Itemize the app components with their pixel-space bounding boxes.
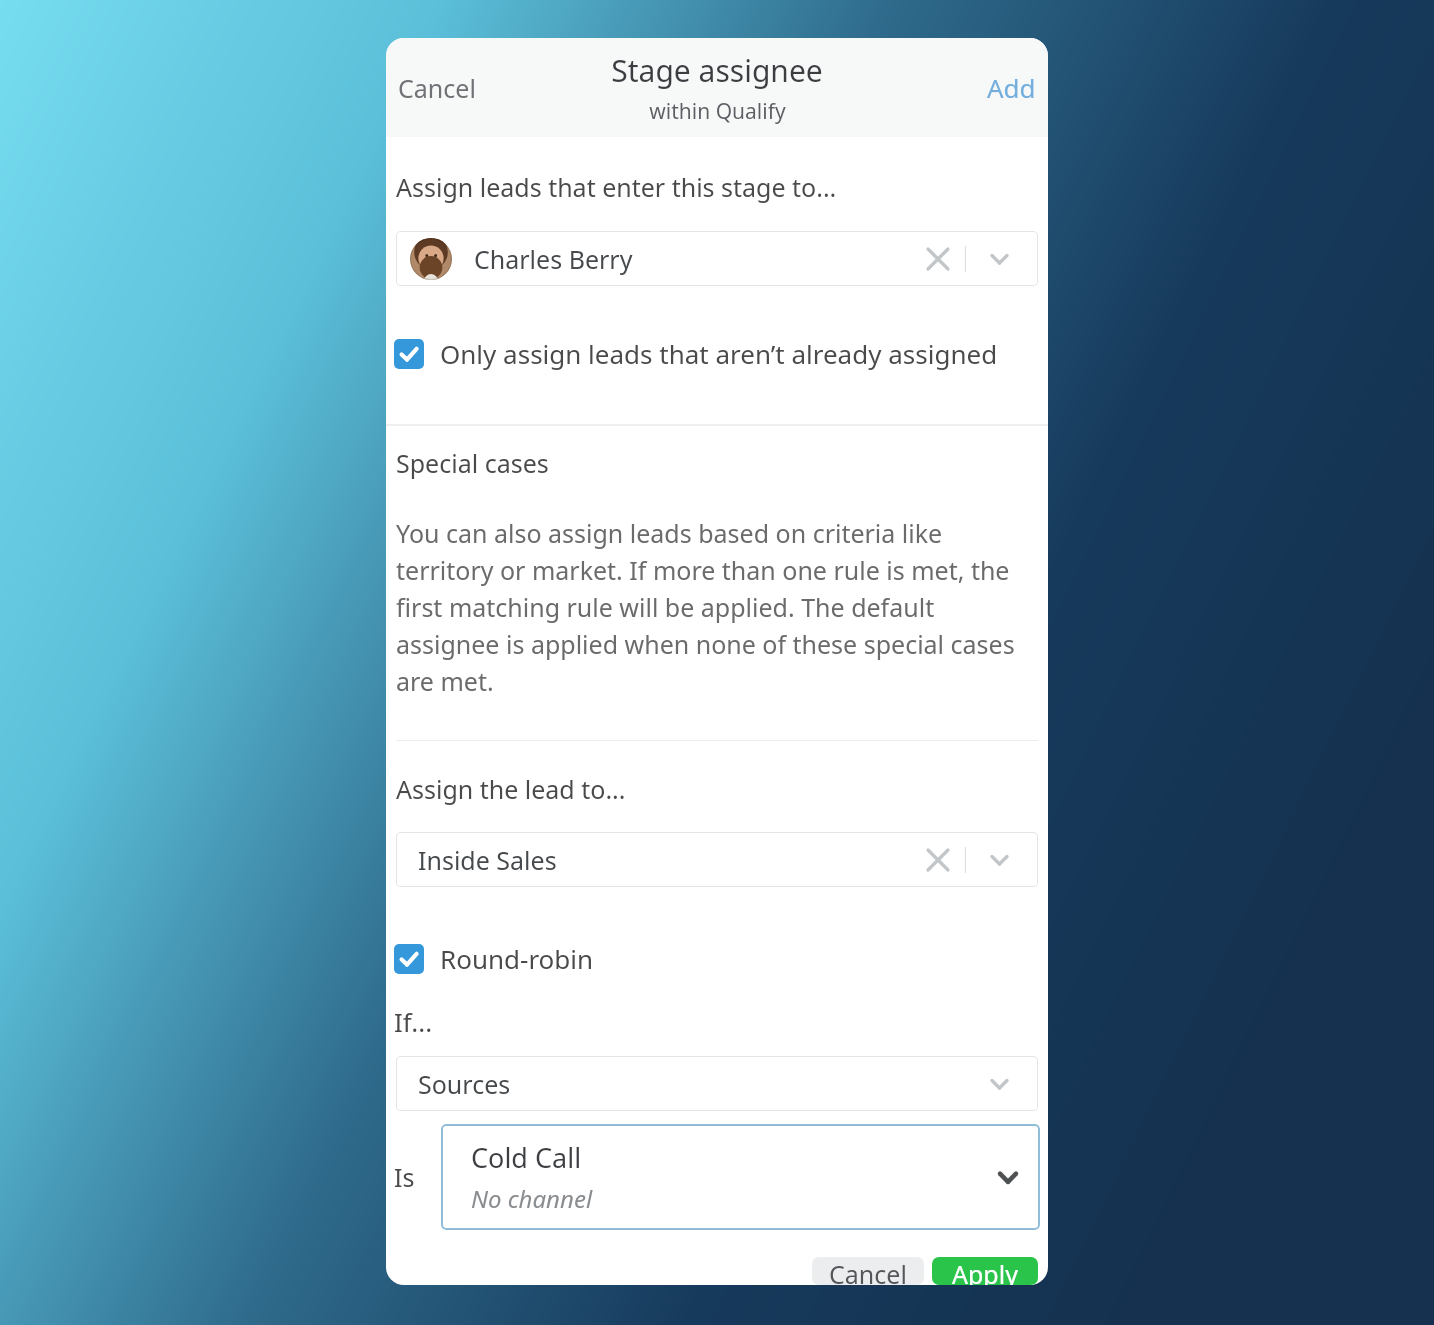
- staticText: Stage assignee: [611, 50, 823, 91]
- staticText: Charles Berry: [474, 242, 633, 276]
- staticText: Assign the lead to...: [396, 772, 626, 806]
- staticText: Cancel: [829, 1257, 907, 1285]
- button[interactable]: Cancel: [386, 61, 488, 115]
- staticText: Only assign leads that aren’t already as…: [440, 336, 998, 371]
- button[interactable]: Open dropdown: [982, 1067, 1016, 1101]
- button[interactable]: Cold Call: [441, 1124, 1040, 1230]
- staticText: Assign leads that enter this stage to...: [396, 170, 837, 204]
- button[interactable]: Open dropdown: [982, 843, 1016, 877]
- button[interactable]: Clear selection: [921, 843, 955, 877]
- staticText: Cold Call: [471, 1139, 582, 1176]
- staticText: You can also assign leads based on crite…: [396, 516, 1030, 698]
- staticText: Apply: [952, 1257, 1018, 1285]
- button[interactable]: Round-robin: [394, 935, 604, 982]
- button[interactable]: Sources: [396, 1056, 1038, 1111]
- staticText: Special cases: [396, 446, 549, 480]
- button[interactable]: Cancel: [812, 1257, 924, 1285]
- staticText: Cancel: [398, 71, 476, 105]
- staticText: Round-robin: [440, 941, 594, 976]
- staticText: within Qualify: [649, 97, 786, 126]
- staticText: If...: [394, 1004, 433, 1039]
- staticText: Inside Sales: [418, 843, 557, 877]
- staticText: No channel: [471, 1182, 593, 1215]
- button[interactable]: Inside Sales: [396, 832, 1038, 887]
- button[interactable]: Only assign leads that aren’t already as…: [394, 330, 1008, 377]
- button[interactable]: Apply: [932, 1257, 1038, 1285]
- button[interactable]: Clear selection: [921, 242, 955, 276]
- staticText: Sources: [418, 1067, 511, 1101]
- staticText: Add: [987, 70, 1036, 105]
- button[interactable]: Add: [975, 60, 1048, 115]
- staticText: Is: [394, 1160, 415, 1194]
- button[interactable]: Open dropdown: [982, 242, 1016, 276]
- button[interactable]: Charles Berry: [396, 231, 1038, 286]
